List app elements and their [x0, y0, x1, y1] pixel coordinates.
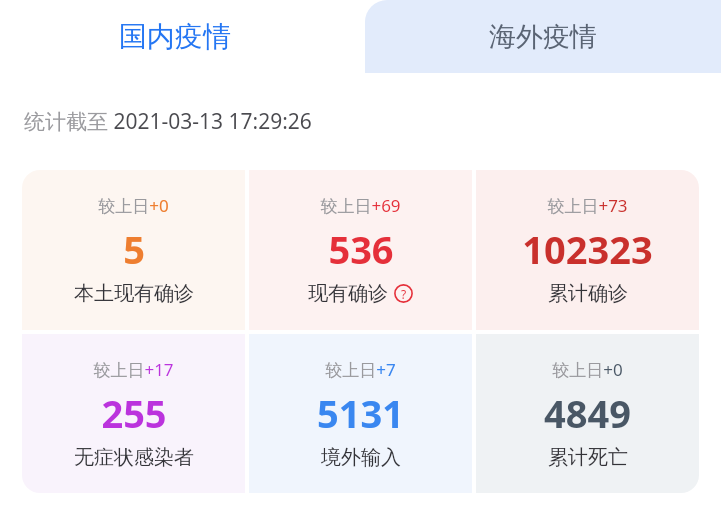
staticText: 较上日+7 — [325, 358, 396, 381]
staticText: 国内疫情 — [119, 19, 231, 54]
staticText: 本土现有确诊 — [74, 281, 194, 306]
staticText: 4849 — [544, 387, 631, 439]
staticText: 累计确诊 — [548, 281, 628, 306]
staticText: 5131 — [317, 387, 404, 439]
button[interactable]: 较上日+69 — [249, 170, 472, 330]
staticText: 较上日+0 — [552, 358, 623, 381]
staticText: 5 — [123, 223, 145, 275]
staticText: 海外疫情 — [489, 20, 597, 54]
staticText: 累计死亡 — [548, 445, 628, 470]
staticText: 536 — [328, 223, 394, 275]
button[interactable]: 较上日+7 — [249, 334, 472, 493]
staticText: 无症状感染者 — [74, 445, 194, 470]
button[interactable]: 较上日+0 — [22, 170, 245, 330]
staticText: 境外输入 — [321, 445, 401, 470]
button[interactable]: 较上日+0 — [476, 334, 699, 493]
staticText: ? — [401, 286, 407, 302]
button[interactable]: 较上日+17 — [22, 334, 245, 493]
button[interactable]: 海外疫情 — [365, 0, 721, 73]
staticText: 较上日+0 — [98, 194, 169, 217]
button[interactable]: 较上日+73 — [476, 170, 699, 330]
staticText: 较上日+73 — [547, 194, 628, 217]
staticText: 102323 — [522, 223, 653, 275]
staticText: 较上日+69 — [320, 194, 401, 217]
staticText: 统计截至 2021-03-13 17:29:26 — [24, 107, 312, 136]
staticText: 255 — [101, 387, 167, 439]
button[interactable]: Help — [394, 284, 413, 303]
staticText: 现有确诊 — [308, 281, 388, 306]
button[interactable]: 国内疫情 — [0, 0, 365, 73]
staticText: 较上日+17 — [93, 358, 174, 381]
